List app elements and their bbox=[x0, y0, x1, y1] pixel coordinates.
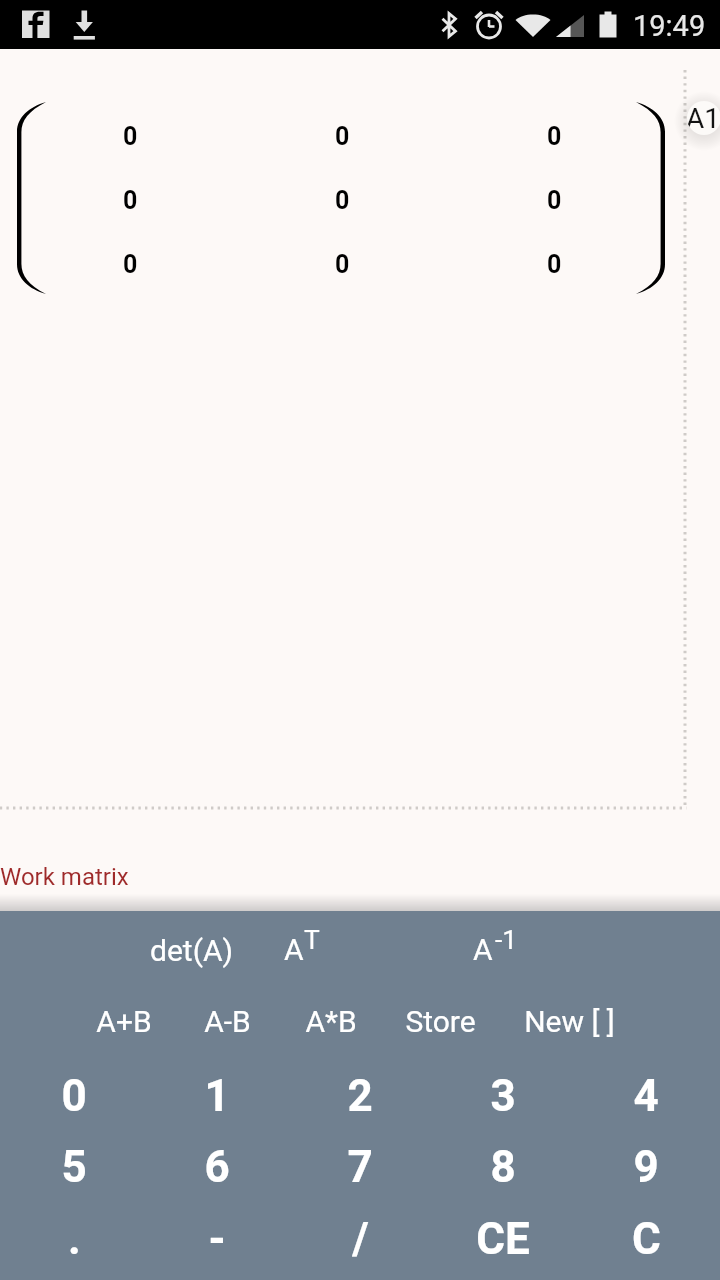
staticText: T bbox=[304, 925, 320, 956]
button[interactable]: det(A) bbox=[121, 918, 261, 982]
staticText: 0 bbox=[123, 250, 138, 279]
button[interactable]: 0 bbox=[85, 110, 175, 162]
button[interactable]: 0 bbox=[85, 238, 175, 290]
button[interactable]: Work matrix bbox=[0, 863, 129, 891]
staticText: 0 bbox=[547, 186, 562, 215]
button[interactable]: Store bbox=[370, 989, 510, 1053]
staticText: det(A) bbox=[150, 933, 233, 968]
staticText: A-B bbox=[204, 1004, 251, 1039]
staticText: - bbox=[208, 1213, 226, 1265]
staticText: 0 bbox=[123, 186, 138, 215]
button[interactable]: 0 bbox=[509, 238, 599, 290]
staticText: 6 bbox=[204, 1141, 230, 1193]
staticText: A bbox=[473, 932, 493, 967]
button[interactable]: 4 bbox=[576, 1064, 716, 1128]
button[interactable]: . bbox=[4, 1207, 144, 1271]
button[interactable]: 5 bbox=[4, 1135, 144, 1199]
button[interactable]: - bbox=[147, 1207, 287, 1271]
staticText: 3 bbox=[490, 1070, 516, 1122]
staticText: A*B bbox=[305, 1004, 357, 1039]
staticText: A1 bbox=[687, 102, 720, 135]
button[interactable]: 0 bbox=[509, 174, 599, 226]
button[interactable]: 1 bbox=[147, 1064, 287, 1128]
button[interactable]: 0 bbox=[297, 238, 387, 290]
staticText: 5 bbox=[61, 1141, 87, 1193]
button[interactable]: New [ ] bbox=[499, 989, 639, 1053]
button[interactable]: 6 bbox=[147, 1135, 287, 1199]
staticText: 8 bbox=[490, 1141, 516, 1193]
button[interactable]: C bbox=[576, 1207, 716, 1271]
button[interactable]: / bbox=[290, 1207, 430, 1271]
button[interactable]: 9 bbox=[576, 1135, 716, 1199]
staticText: 0 bbox=[335, 122, 350, 151]
staticText: 2 bbox=[347, 1070, 373, 1122]
staticText: 0 bbox=[335, 250, 350, 279]
staticText: -1 bbox=[495, 925, 518, 956]
staticText: A bbox=[284, 932, 304, 967]
staticText: New [ ] bbox=[524, 1004, 615, 1039]
staticText: Store bbox=[405, 1004, 476, 1039]
button[interactable]: A+B bbox=[54, 989, 194, 1053]
button[interactable]: A bbox=[434, 917, 554, 981]
button[interactable]: 2 bbox=[290, 1064, 430, 1128]
button[interactable]: 7 bbox=[290, 1135, 430, 1199]
button[interactable]: A*B bbox=[261, 989, 401, 1053]
staticText: 9 bbox=[633, 1141, 659, 1193]
staticText: 0 bbox=[547, 250, 562, 279]
staticText: 19:49 bbox=[633, 9, 706, 43]
staticText: . bbox=[68, 1213, 81, 1265]
button[interactable]: CE bbox=[433, 1207, 573, 1271]
staticText: 0 bbox=[123, 122, 138, 151]
button[interactable]: 0 bbox=[85, 174, 175, 226]
staticText: 0 bbox=[61, 1070, 87, 1122]
button[interactable]: A-B bbox=[157, 989, 297, 1053]
staticText: 7 bbox=[347, 1141, 373, 1193]
button[interactable]: 0 bbox=[297, 110, 387, 162]
button[interactable]: 0 bbox=[297, 174, 387, 226]
staticText: CE bbox=[476, 1213, 530, 1265]
button[interactable]: 0 bbox=[509, 110, 599, 162]
staticText: A+B bbox=[96, 1004, 152, 1039]
staticText: 4 bbox=[633, 1070, 659, 1122]
button[interactable]: Select matrix A1 bbox=[687, 101, 720, 135]
staticText: 0 bbox=[547, 122, 562, 151]
staticText: 0 bbox=[335, 186, 350, 215]
staticText: C bbox=[632, 1213, 661, 1265]
staticText: 1 bbox=[204, 1070, 230, 1122]
staticText: / bbox=[352, 1213, 369, 1265]
button[interactable]: A bbox=[243, 917, 363, 981]
staticText: Work matrix bbox=[0, 863, 129, 891]
button[interactable]: 8 bbox=[433, 1135, 573, 1199]
button[interactable]: 0 bbox=[4, 1064, 144, 1128]
button[interactable]: 3 bbox=[433, 1064, 573, 1128]
